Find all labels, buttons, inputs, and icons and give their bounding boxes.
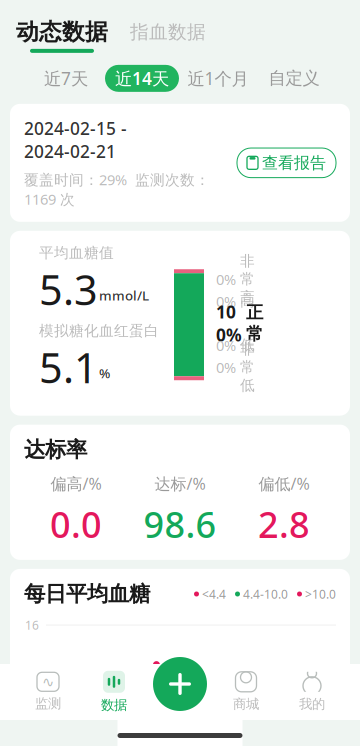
- staticText: mmol/L: [99, 286, 149, 304]
- staticText: 数据: [101, 697, 127, 713]
- button[interactable]: 添加记录: [153, 657, 207, 711]
- staticText: 正常: [246, 302, 263, 344]
- staticText: 覆盖时间：29% 监测次数：1169 次: [24, 170, 210, 209]
- staticText: 动态数据: [16, 18, 108, 46]
- staticText: 监测: [35, 695, 61, 712]
- staticText: 商城: [233, 696, 259, 712]
- button[interactable]: 近14天: [105, 65, 179, 92]
- staticText: 100%: [216, 300, 242, 346]
- staticText: 平均血糖值: [39, 244, 114, 262]
- staticText: >10.0: [305, 586, 336, 602]
- button[interactable]: 指血数据: [130, 20, 206, 50]
- staticText: 自定义: [268, 68, 319, 89]
- staticText: 达标/%: [154, 473, 205, 494]
- staticText: 偏低/%: [258, 473, 309, 494]
- button[interactable]: 自定义: [257, 65, 331, 92]
- button[interactable]: 近1个月: [181, 65, 255, 92]
- staticText: 0%: [216, 357, 236, 377]
- button[interactable]: 近7天: [29, 65, 103, 92]
- staticText: 0%: [216, 335, 236, 355]
- staticText: 指血数据: [130, 20, 206, 43]
- staticText: 近14天: [115, 67, 169, 90]
- staticText: 偏高/%: [50, 473, 101, 494]
- staticText: 0%: [216, 291, 236, 311]
- staticText: 查看报告: [262, 153, 326, 173]
- staticText: 2024-02-15 - 2024-02-21: [24, 117, 127, 163]
- staticText: 98.6: [143, 500, 216, 548]
- staticText: 0%: [216, 269, 236, 289]
- button[interactable]: 商城: [213, 669, 279, 715]
- staticText: 16: [25, 617, 39, 633]
- staticText: 高: [240, 292, 255, 310]
- staticText: 0.0: [50, 500, 102, 548]
- staticText: 5.3: [39, 262, 98, 317]
- staticText: 2.8: [258, 500, 310, 548]
- button[interactable]: 动态数据: [16, 18, 108, 53]
- button[interactable]: ∿: [15, 669, 81, 715]
- staticText: 12: [25, 666, 39, 682]
- staticText: <4.4: [202, 586, 226, 602]
- staticText: 非常高: [240, 252, 255, 306]
- staticText: 低: [240, 336, 255, 354]
- staticText: 近1个月: [187, 67, 248, 90]
- staticText: ∿: [42, 673, 54, 690]
- button[interactable]: 数据: [81, 669, 147, 715]
- button[interactable]: 查看报告: [237, 148, 336, 178]
- staticText: %: [99, 364, 110, 382]
- staticText: 模拟糖化血红蛋白: [39, 322, 159, 340]
- staticText: 达标率: [24, 437, 87, 463]
- staticText: 我的: [299, 696, 325, 712]
- staticText: 每日平均血糖: [24, 581, 150, 607]
- staticText: 非常低: [240, 340, 255, 394]
- button[interactable]: 我的: [279, 669, 345, 715]
- staticText: 近7天: [44, 67, 88, 90]
- staticText: 5.1: [39, 340, 98, 395]
- staticText: 4.4-10.0: [243, 586, 288, 602]
